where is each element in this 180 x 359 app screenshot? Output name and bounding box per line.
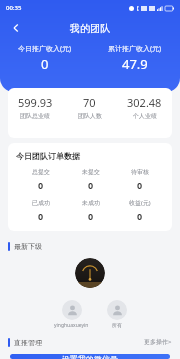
staticText: 收益(元) bbox=[129, 199, 151, 207]
button[interactable]: 直推管理 bbox=[8, 336, 172, 348]
staticText: 总提交 bbox=[32, 168, 50, 176]
staticText: 今日推广收入(元) bbox=[18, 44, 72, 54]
button[interactable]: 累计推广收入(元) bbox=[90, 44, 180, 73]
button[interactable]: 所有 bbox=[107, 300, 127, 328]
staticText: 未提交 bbox=[82, 168, 100, 176]
button[interactable]: 今日团队订单数据 bbox=[8, 143, 172, 231]
button[interactable]: 今日推广收入(元) bbox=[0, 44, 90, 73]
staticText: 47.9 bbox=[122, 55, 148, 73]
staticText: 0 bbox=[38, 179, 44, 191]
staticText: 未成功 bbox=[82, 199, 100, 207]
staticText: 累计推广收入(元) bbox=[108, 44, 162, 54]
button[interactable]: 设置我的微信号 bbox=[10, 354, 170, 359]
staticText: 599.93 bbox=[18, 95, 53, 110]
staticText: 0 bbox=[41, 55, 49, 73]
button[interactable]: yinghuaxueyin bbox=[54, 300, 89, 329]
staticText: 更多操作> bbox=[144, 338, 172, 346]
staticText: 今日团队订单数据 bbox=[16, 151, 80, 161]
staticText: 我的团队 bbox=[70, 22, 110, 35]
staticText: 0 bbox=[137, 210, 143, 222]
staticText: 70 bbox=[83, 95, 96, 110]
staticText: 302.48 bbox=[127, 95, 162, 110]
button[interactable]: 最新下级 bbox=[8, 240, 172, 252]
button[interactable]: Member avatar bbox=[75, 258, 105, 288]
staticText: 所有 bbox=[112, 322, 122, 328]
staticText: 团队人数 bbox=[78, 112, 102, 120]
button[interactable]: 599.93 bbox=[8, 88, 172, 138]
staticText: 0 bbox=[38, 210, 44, 222]
staticText: 0 bbox=[137, 179, 143, 191]
staticText: 待审核 bbox=[131, 168, 149, 176]
staticText: 0 bbox=[88, 179, 94, 191]
button[interactable]: Back bbox=[4, 16, 28, 40]
staticText: 团队总业绩 bbox=[20, 112, 50, 120]
staticText: 直推管理 bbox=[14, 338, 42, 347]
staticText: 最新下级 bbox=[14, 242, 42, 251]
staticText: 设置我的微信号 bbox=[62, 354, 118, 359]
staticText: 已成功 bbox=[32, 199, 50, 207]
staticText: 00:35 bbox=[6, 4, 22, 12]
staticText: 0 bbox=[88, 210, 94, 222]
staticText: 个人业绩 bbox=[133, 112, 157, 120]
staticText: yinghuaxueyin bbox=[54, 322, 89, 329]
